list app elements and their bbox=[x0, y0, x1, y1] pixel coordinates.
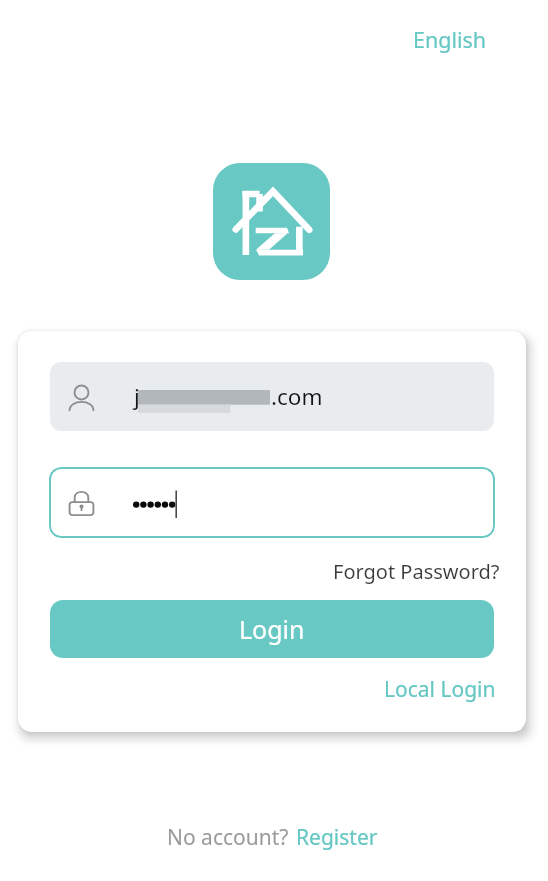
button[interactable]: English bbox=[403, 19, 497, 60]
staticText: Register bbox=[296, 823, 378, 852]
button[interactable]: Register bbox=[296, 823, 378, 852]
button[interactable] bbox=[49, 467, 495, 538]
staticText: English bbox=[413, 25, 487, 54]
button[interactable]: Login bbox=[50, 600, 494, 658]
button[interactable]: j bbox=[50, 362, 494, 431]
staticText: j bbox=[134, 381, 140, 412]
staticText: No account? bbox=[167, 823, 289, 852]
staticText: Login bbox=[239, 612, 305, 646]
staticText: Local Login bbox=[384, 675, 496, 704]
button[interactable]: Local Login bbox=[384, 675, 496, 704]
staticText: Forgot Password? bbox=[333, 558, 500, 585]
button[interactable]: Forgot Password? bbox=[333, 558, 500, 585]
staticText: .com bbox=[271, 381, 323, 412]
